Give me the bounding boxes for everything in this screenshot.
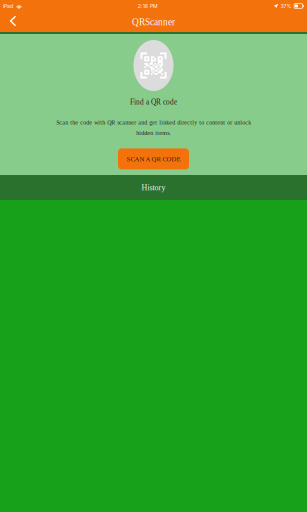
staticText: QRScanner bbox=[132, 17, 175, 27]
button[interactable]: SCAN A QR CODE bbox=[118, 148, 189, 169]
staticText: History bbox=[141, 183, 165, 192]
staticText: 2:16 PM bbox=[138, 3, 158, 9]
staticText: Scan the code with QR scanner and get li… bbox=[56, 119, 251, 136]
button[interactable]: History bbox=[0, 175, 307, 200]
staticText: SCAN A QR CODE bbox=[126, 155, 180, 163]
staticText: iPad bbox=[3, 3, 13, 9]
staticText: 37% bbox=[281, 3, 292, 9]
button[interactable]: Back bbox=[0, 12, 24, 32]
staticText: Find a QR code bbox=[130, 98, 177, 106]
